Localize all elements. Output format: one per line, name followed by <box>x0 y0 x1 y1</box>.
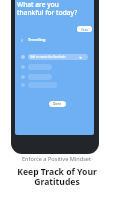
button[interactable]: Back <box>19 36 25 42</box>
button[interactable] <box>28 64 52 70</box>
staticText: Enforce a Positive Mindset <box>22 155 92 163</box>
staticText: ‹ <box>21 36 23 42</box>
staticText: Test <box>81 27 88 32</box>
button[interactable]: Add to create the Gratitude <box>28 54 88 60</box>
staticText: What are you thankful for today? <box>17 0 78 17</box>
button[interactable] <box>28 82 57 88</box>
staticText: Traveling <box>28 37 46 42</box>
button[interactable]: Done <box>49 101 66 107</box>
staticText: Keep Track of Your Gratitudes <box>17 166 97 187</box>
button[interactable] <box>28 74 52 80</box>
button[interactable]: Test <box>77 26 92 32</box>
staticText: Add to create the Gratitude <box>30 55 66 59</box>
staticText: Done <box>53 102 62 106</box>
